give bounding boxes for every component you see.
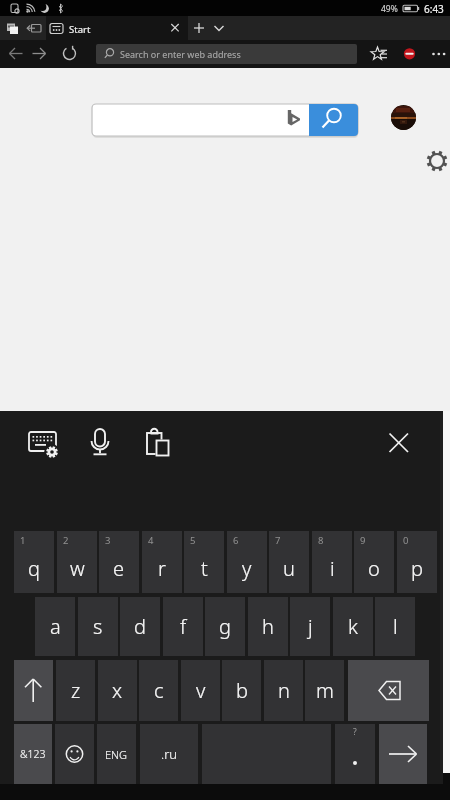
button[interactable]: q [14,531,54,593]
button[interactable]: a [35,597,75,656]
button[interactable]: t [184,531,224,593]
button[interactable] [386,430,412,456]
button[interactable]: k [333,597,373,656]
button[interactable]: f [163,597,203,656]
staticText: d [134,613,146,640]
staticText: w [70,555,85,582]
button[interactable]: u [269,531,309,593]
button[interactable] [4,20,22,37]
staticText: 7 [275,534,281,547]
button[interactable]: g [205,597,245,656]
staticText: t [201,555,208,582]
button[interactable]: z [56,660,95,721]
staticText: k [348,613,358,640]
button[interactable]: Search or enter web address [96,44,357,64]
staticText: ? [353,726,357,738]
button[interactable] [46,16,188,40]
staticText: 1 [20,534,26,547]
button[interactable]: p [397,531,437,593]
button[interactable]: e [99,531,139,593]
staticText: Search or enter web address [120,48,241,60]
button[interactable]: x [98,660,137,721]
staticText: r [158,555,166,582]
button[interactable] [366,43,392,65]
staticText: z [71,677,81,704]
staticText: n [278,677,290,704]
staticText: 0 [403,534,409,547]
button[interactable]: w [57,531,97,593]
staticText: g [219,613,231,640]
button[interactable] [398,43,421,65]
staticText: q [28,555,40,582]
button[interactable]: o [354,531,394,593]
button[interactable]: j [290,597,330,656]
button[interactable] [379,724,427,784]
staticText: 3 [105,534,111,547]
button[interactable] [210,20,227,37]
staticText: 49% [381,3,398,15]
staticText: c [154,677,164,704]
staticText: s [93,613,103,640]
staticText: 2 [63,534,69,547]
staticText: j [308,613,313,640]
button[interactable] [391,105,416,130]
button[interactable]: r [142,531,182,593]
button[interactable] [309,104,358,136]
button[interactable] [26,428,60,458]
button[interactable]: m [305,660,344,721]
button[interactable]: &123 [14,724,52,784]
staticText: f [180,613,187,640]
button[interactable]: .ru [140,724,198,784]
button[interactable] [166,20,183,37]
button[interactable] [56,43,82,65]
staticText: Start [69,23,91,36]
staticText: o [368,555,380,582]
button[interactable]: l [375,597,415,656]
staticText: i [330,555,335,582]
staticText: 5 [190,534,196,547]
button[interactable] [348,660,429,721]
button[interactable]: y [227,531,267,593]
button[interactable]: s [78,597,118,656]
button[interactable]: i [312,531,352,593]
staticText: 4 [148,534,154,547]
staticText: 8 [318,534,324,547]
staticText: 6 [233,534,239,547]
staticText: b [236,677,248,704]
button[interactable] [26,20,44,37]
button[interactable]: d [120,597,160,656]
button[interactable] [14,660,53,721]
staticText: h [262,613,274,640]
button[interactable]: c [139,660,178,721]
staticText: &123 [20,747,46,761]
staticText: x [112,677,123,704]
staticText: ENG [105,747,128,762]
button[interactable]: h [248,597,288,656]
button[interactable] [88,427,112,459]
staticText: u [283,555,295,582]
button[interactable]: ENG [97,724,136,784]
staticText: 6:43 [424,2,444,16]
button[interactable] [55,724,94,784]
button[interactable]: v [181,660,220,721]
staticText: v [196,677,206,704]
staticText: e [113,555,125,582]
button[interactable] [426,150,448,172]
button[interactable] [191,20,207,37]
staticText: p [411,555,423,582]
button[interactable]: ? [335,724,375,784]
button[interactable]: n [264,660,303,721]
staticText: .ru [161,745,178,763]
staticText: a [50,613,61,640]
button[interactable] [28,43,54,65]
staticText: l [393,613,398,640]
staticText: m [316,677,334,704]
staticText: 9 [360,534,366,547]
button[interactable] [0,43,28,65]
button[interactable] [92,104,358,136]
button[interactable] [143,428,173,460]
button[interactable] [426,43,450,65]
button[interactable]: b [222,660,261,721]
staticText: y [242,555,252,582]
